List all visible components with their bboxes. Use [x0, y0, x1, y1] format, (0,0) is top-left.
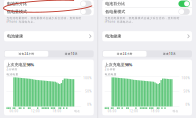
staticText: 电池百分比	[105, 1, 125, 6]
button[interactable]: Switch on	[178, 0, 190, 7]
staticText: 06:00	[108, 109, 117, 113]
staticText: 上次充电至98%	[6, 62, 34, 67]
button[interactable]: Switch off	[178, 8, 190, 15]
staticText: 100%	[83, 76, 91, 80]
staticText: 2分钟前	[105, 68, 116, 71]
button[interactable]: Switch off	[80, 8, 91, 15]
staticText: 当电池电量低时，低电量模式会减少后台活动，直到你给 iPhone 充满电为止。	[105, 17, 180, 23]
staticText: 0%	[87, 103, 91, 106]
staticText: 06:00	[9, 109, 18, 113]
staticText: 过去24小时	[117, 52, 133, 56]
staticText: 过去10天	[163, 52, 176, 56]
staticText: 现在	[172, 109, 178, 113]
staticText: 过去10天	[65, 52, 78, 56]
staticText: 低电量模式	[7, 9, 27, 14]
staticText: 现在	[74, 109, 80, 113]
staticText: 12:00	[31, 109, 40, 113]
button[interactable]: 电池百分比	[102, 0, 192, 7]
staticText: 当电池电量低时，低电量模式会减少后台活动，直到你给 iPhone 充满电为止。	[6, 17, 81, 23]
staticText: 电池电量	[105, 73, 117, 76]
button[interactable]: 过去10天	[49, 51, 93, 57]
button[interactable]: 过去10天	[148, 51, 191, 57]
staticText: 18:00	[151, 109, 160, 113]
staticText: 18:00	[53, 109, 62, 113]
staticText: 低电量模式	[105, 9, 125, 14]
button[interactable]: 电池百分比	[4, 0, 94, 7]
button[interactable]: 过去24小时	[103, 51, 146, 57]
staticText: 过去24小时	[18, 52, 34, 56]
staticText: 0%	[186, 103, 190, 106]
staticText: 12:00	[129, 109, 138, 113]
staticText: 上次充电至98%	[105, 62, 133, 67]
button[interactable]: 过去24小时	[5, 51, 48, 57]
button[interactable]: 电池健康	[4, 31, 94, 41]
staticText: 100%	[182, 76, 190, 80]
staticText: 2分钟前	[6, 68, 17, 71]
staticText: 50%	[85, 90, 91, 93]
staticText: 电池健康	[7, 34, 23, 39]
button[interactable]: 电池健康	[102, 31, 192, 41]
button[interactable]: 低电量模式	[4, 8, 94, 15]
staticText: 电池百分比	[7, 1, 27, 6]
button[interactable]: 低电量模式	[102, 8, 192, 15]
staticText: 电池电量	[6, 73, 18, 76]
button[interactable]: Switch off	[80, 0, 91, 7]
staticText: 50%	[184, 90, 190, 93]
staticText: 电池健康	[105, 34, 121, 39]
